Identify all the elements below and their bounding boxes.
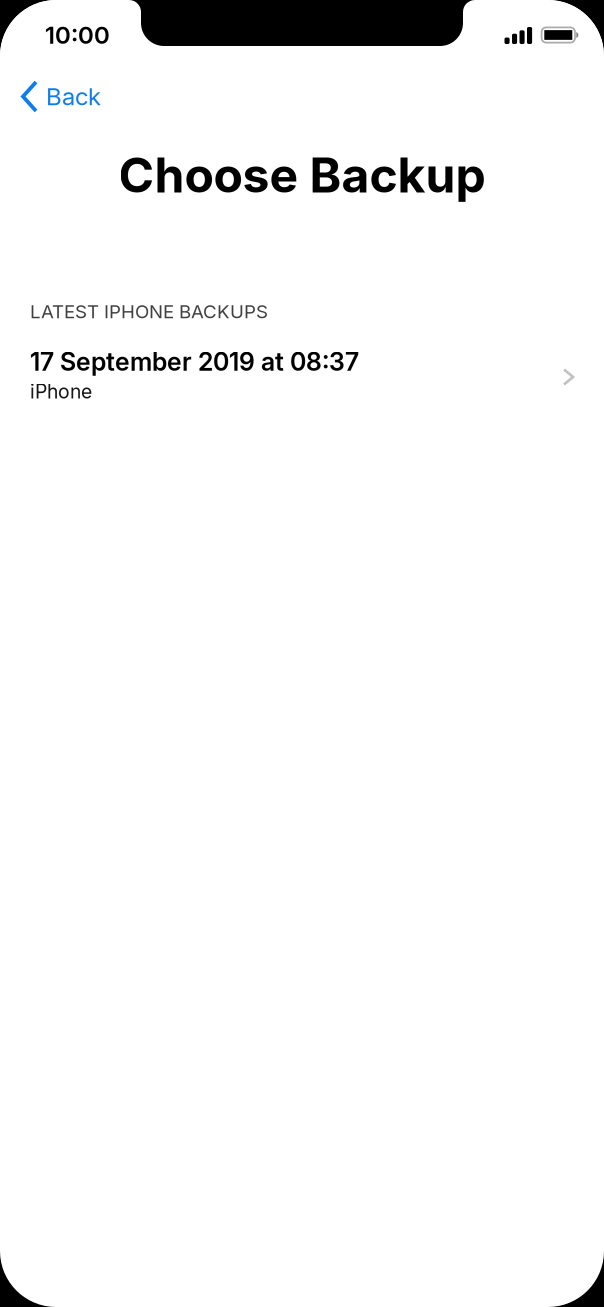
staticText: LATEST IPHONE BACKUPS: [30, 300, 268, 323]
button[interactable]: 17 September 2019 at 08:37: [0, 323, 604, 415]
staticText: iPhone: [30, 380, 92, 403]
staticText: Back: [46, 82, 101, 111]
button[interactable]: Back: [0, 76, 101, 117]
staticText: 10:00: [45, 20, 110, 49]
staticText: 17 September 2019 at 08:37: [30, 347, 359, 377]
staticText: Choose Backup: [118, 146, 485, 204]
